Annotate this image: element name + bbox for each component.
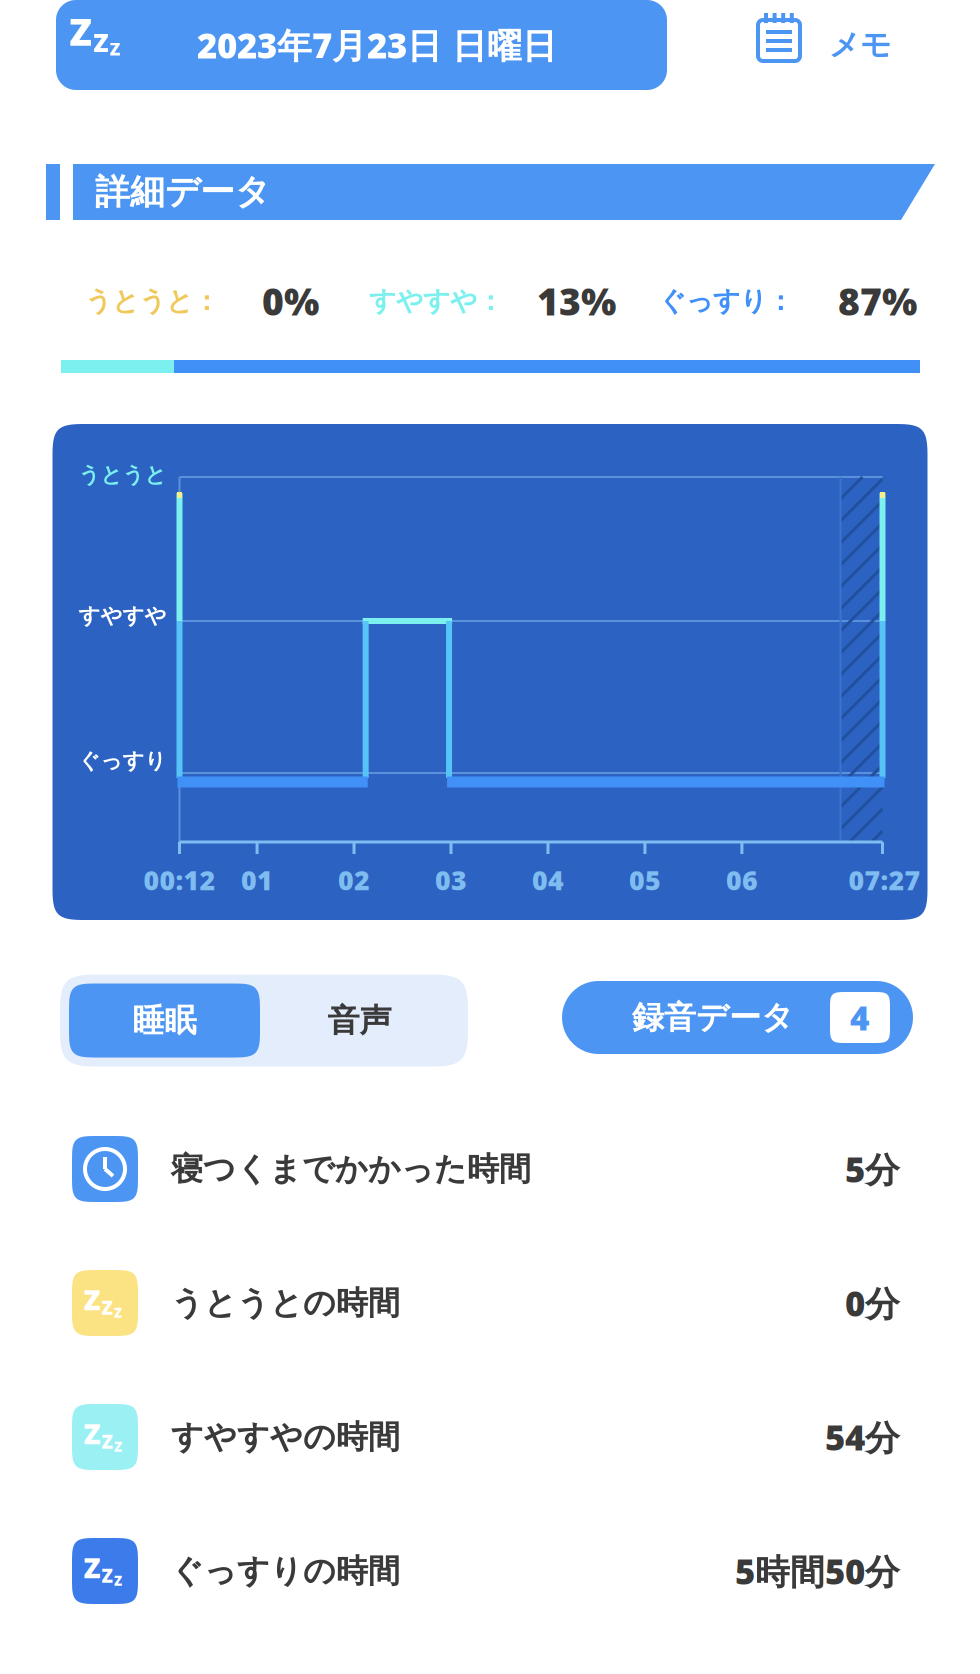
staticText: すやすや — [78, 603, 166, 629]
button[interactable]: Z — [0, 1370, 980, 1504]
button[interactable]: 音声 — [260, 983, 459, 1057]
staticText: 5分 — [845, 1146, 900, 1192]
staticText: Z — [102, 1429, 113, 1454]
staticText: 05 — [629, 862, 661, 898]
staticText: 02 — [338, 862, 370, 898]
staticText: ぐっすりの時間 — [171, 1551, 400, 1591]
staticText: 00:12 — [143, 862, 215, 898]
staticText: Z — [102, 1295, 113, 1320]
staticText: 録音データ — [632, 998, 794, 1037]
staticText: 5時間50分 — [735, 1548, 900, 1594]
button[interactable]: メモ — [755, 0, 891, 90]
staticText: 0分 — [845, 1280, 900, 1326]
staticText: すやすや： — [369, 285, 504, 317]
staticText: 54分 — [825, 1414, 900, 1460]
staticText: Z — [114, 1438, 122, 1455]
staticText: 13% — [537, 276, 616, 326]
staticText: 2023年7月23日 日曜日 — [197, 22, 557, 68]
staticText: うとうと — [78, 462, 166, 488]
button[interactable]: 睡眠 — [69, 983, 260, 1057]
button[interactable]: Z — [56, 0, 667, 90]
staticText: 87% — [838, 276, 917, 326]
staticText: メモ — [829, 26, 891, 64]
button[interactable]: 録音データ — [562, 984, 913, 1057]
button[interactable]: 寝つくまでかかった時間 — [0, 1102, 980, 1236]
staticText: 睡眠 — [132, 1001, 196, 1040]
staticText: 03 — [435, 862, 467, 898]
staticText: すやすやの時間 — [171, 1417, 400, 1457]
staticText: 0% — [262, 276, 319, 326]
staticText: 01 — [241, 862, 273, 898]
staticText: うとうとの時間 — [171, 1283, 400, 1323]
staticText: Z — [83, 1549, 100, 1586]
button[interactable]: Z — [0, 1236, 980, 1370]
staticText: Z — [83, 1415, 100, 1452]
staticText: Z — [114, 1572, 122, 1589]
staticText: 詳細データ — [95, 171, 270, 213]
staticText: Z — [110, 37, 121, 60]
staticText: 07:27 — [848, 862, 920, 898]
staticText: 06 — [726, 862, 758, 898]
staticText: Z — [93, 25, 108, 59]
staticText: ぐっすり — [78, 748, 166, 774]
staticText: Z — [83, 1281, 100, 1318]
staticText: 寝つくまでかかった時間 — [171, 1149, 531, 1189]
staticText: うとうと： — [85, 285, 220, 317]
button[interactable]: Z — [0, 1504, 980, 1638]
staticText: Z — [69, 6, 92, 56]
staticText: Z — [114, 1304, 122, 1321]
staticText: 4 — [850, 995, 870, 1040]
staticText: Z — [102, 1563, 113, 1588]
staticText: 04 — [532, 862, 564, 898]
staticText: ぐっすり： — [659, 285, 794, 317]
staticText: 音声 — [327, 1001, 391, 1040]
